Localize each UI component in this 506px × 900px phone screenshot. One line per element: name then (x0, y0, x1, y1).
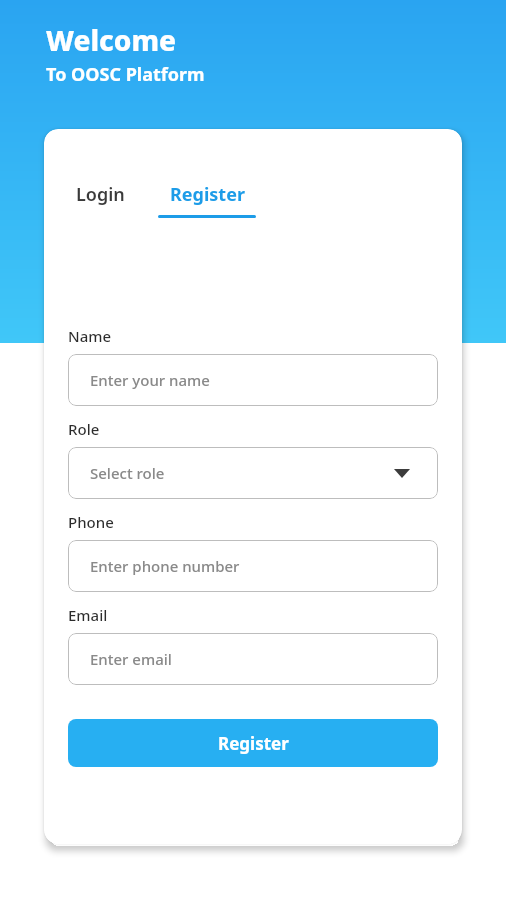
button[interactable]: Login (76, 182, 125, 207)
button[interactable]: Register (158, 182, 256, 218)
staticText: Login (76, 182, 125, 207)
staticText: Register (218, 732, 289, 755)
staticText: Register (170, 182, 245, 207)
staticText: Phone (68, 512, 114, 532)
staticText: Email (68, 605, 108, 625)
staticText: To OOSC Platform (46, 62, 205, 87)
staticText: Welcome (46, 21, 177, 59)
button[interactable]: Register (68, 719, 438, 767)
staticText: Select role (90, 463, 165, 483)
staticText: Enter phone number (90, 556, 240, 576)
staticText: Role (68, 419, 100, 439)
button[interactable]: Enter email (68, 633, 438, 685)
staticText: Name (68, 326, 112, 346)
button[interactable]: Enter your name (68, 354, 438, 406)
staticText: Enter your name (90, 370, 210, 390)
button[interactable]: Select role (68, 447, 438, 499)
button[interactable]: Enter phone number (68, 540, 438, 592)
staticText: Enter email (90, 649, 172, 669)
